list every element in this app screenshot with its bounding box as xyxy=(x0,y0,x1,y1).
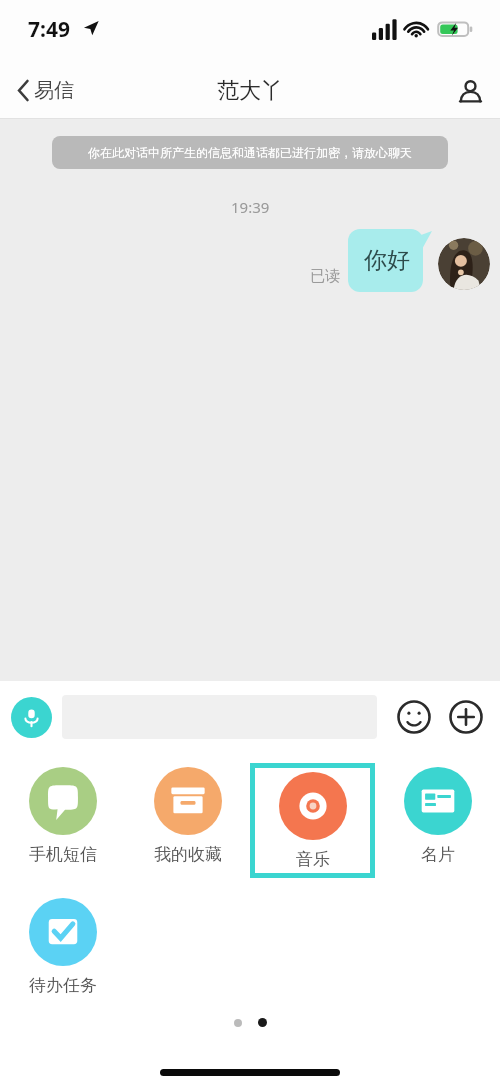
button[interactable]: 名片 xyxy=(375,763,500,869)
button[interactable]: 我的收藏 xyxy=(125,763,250,869)
button[interactable]: 你好 xyxy=(348,229,432,292)
button[interactable]: 音乐 xyxy=(255,768,370,873)
button[interactable]: 待办任务 xyxy=(0,894,125,1000)
staticText: 7:49 xyxy=(28,15,70,44)
button[interactable]: Emoji xyxy=(391,694,437,740)
staticText: 范大丫 xyxy=(217,77,283,105)
staticText: 已读 xyxy=(310,267,340,286)
staticText: 19:39 xyxy=(231,197,270,217)
button[interactable]: 易信 xyxy=(0,70,88,111)
button[interactable]: 手机短信 xyxy=(0,763,125,869)
button[interactable]: More attachments xyxy=(443,694,489,740)
button[interactable]: Contact info xyxy=(441,70,500,112)
staticText: 我的收藏 xyxy=(154,844,222,865)
staticText: 你好 xyxy=(364,246,410,275)
button[interactable]: Voice message xyxy=(11,697,52,738)
staticText: 待办任务 xyxy=(29,975,97,996)
staticText: 你在此对话中所产生的信息和通话都已进行加密，请放心聊天 xyxy=(88,145,412,160)
staticText: 音乐 xyxy=(296,849,330,870)
staticText: 手机短信 xyxy=(29,844,97,865)
button[interactable]: Avatar xyxy=(438,238,490,290)
staticText: 名片 xyxy=(421,844,455,865)
staticText: 易信 xyxy=(34,78,74,103)
